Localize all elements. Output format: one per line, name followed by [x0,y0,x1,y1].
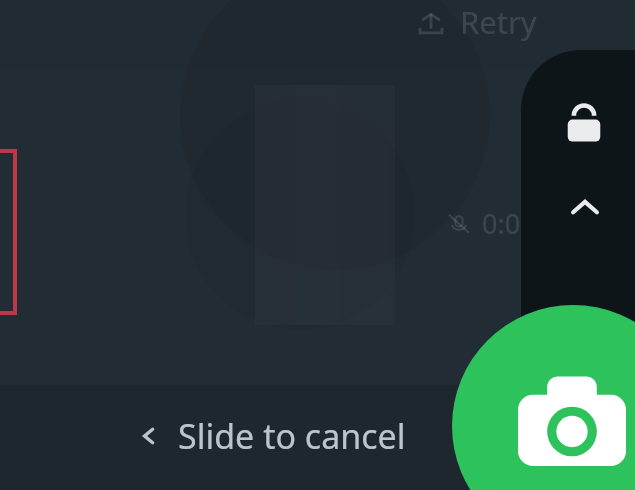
button[interactable]: Expand options [567,190,603,226]
button[interactable]: Slide to cancel [136,410,406,462]
button[interactable]: Lock recording [562,102,606,146]
button[interactable]: Retry [414,1,537,43]
staticText: Slide to cancel [178,413,406,459]
staticText: 0:0 [482,205,521,242]
staticText: Retry [460,1,537,43]
button[interactable]: Camera [452,305,635,490]
other: Retry [414,5,448,39]
